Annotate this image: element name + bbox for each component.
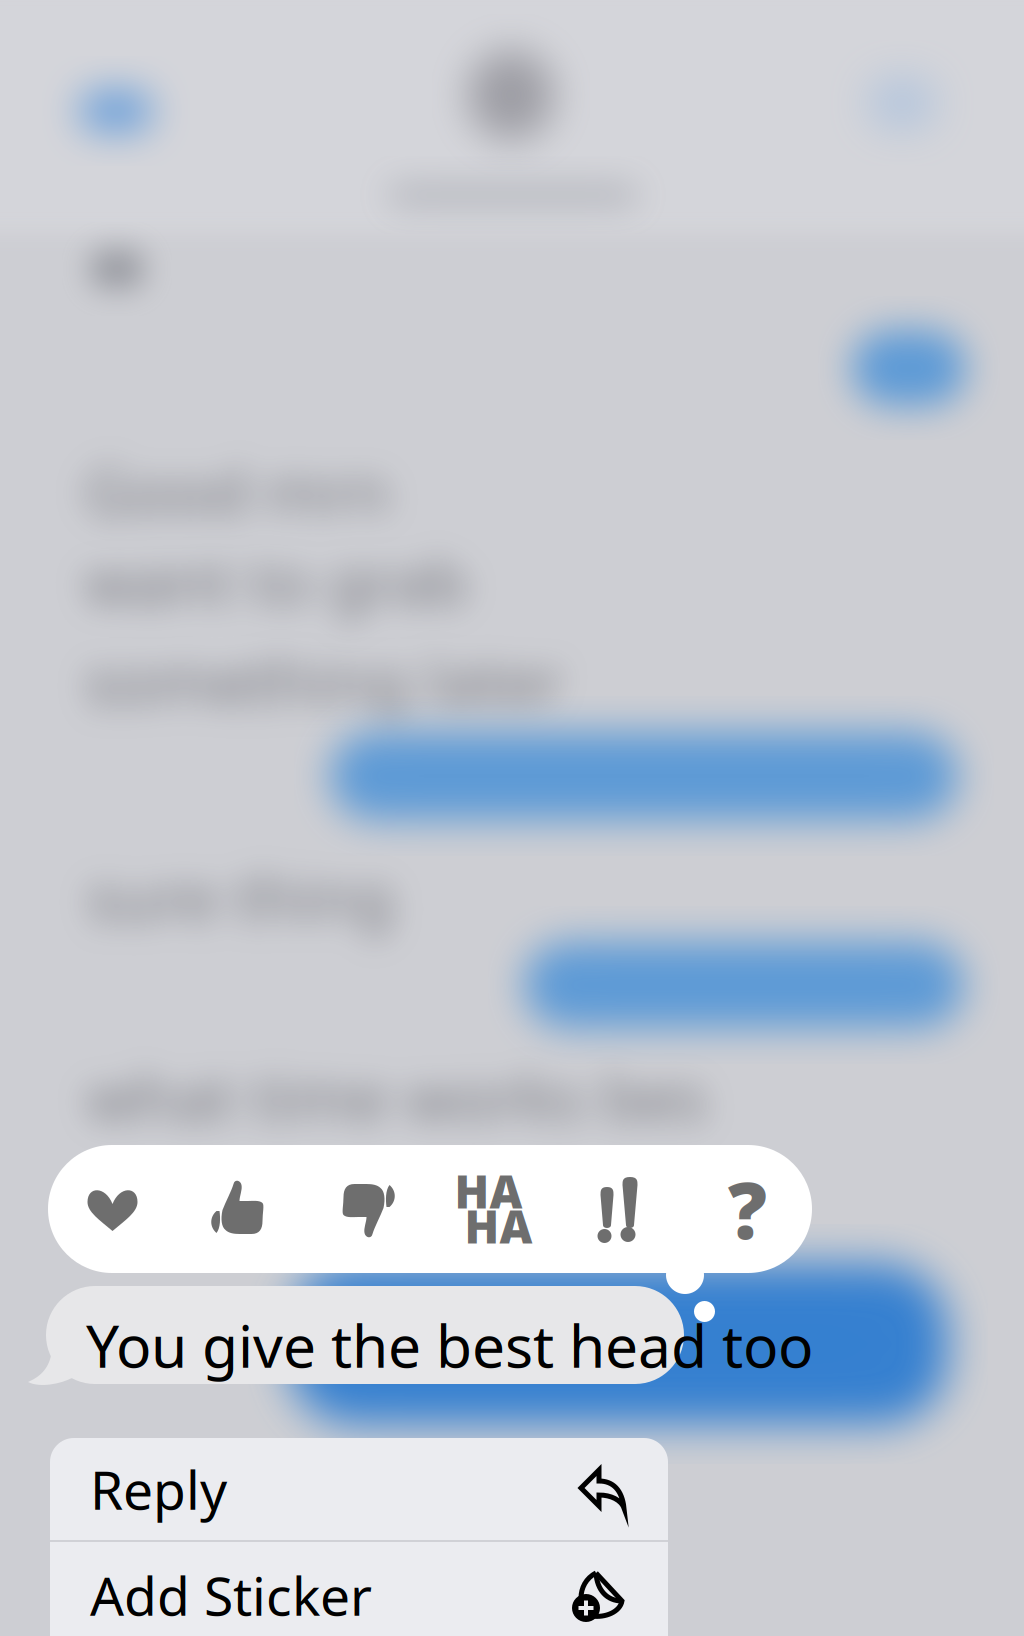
- staticText: Reply: [90, 1454, 227, 1524]
- staticText: HA: [464, 1196, 532, 1256]
- staticText: You give the best head too: [86, 1306, 813, 1384]
- staticText: ?: [728, 1158, 767, 1260]
- button[interactable]: HA: [430, 1145, 557, 1273]
- button[interactable]: Reply: [50, 1438, 668, 1540]
- staticText: HA: [454, 1161, 522, 1221]
- button[interactable]: Add Sticker: [50, 1542, 668, 1636]
- button[interactable]: [49, 1145, 176, 1273]
- staticText: Add Sticker: [90, 1560, 372, 1630]
- button[interactable]: [303, 1145, 430, 1273]
- button[interactable]: ?: [684, 1145, 811, 1273]
- button[interactable]: [557, 1145, 684, 1273]
- button[interactable]: [176, 1145, 303, 1273]
